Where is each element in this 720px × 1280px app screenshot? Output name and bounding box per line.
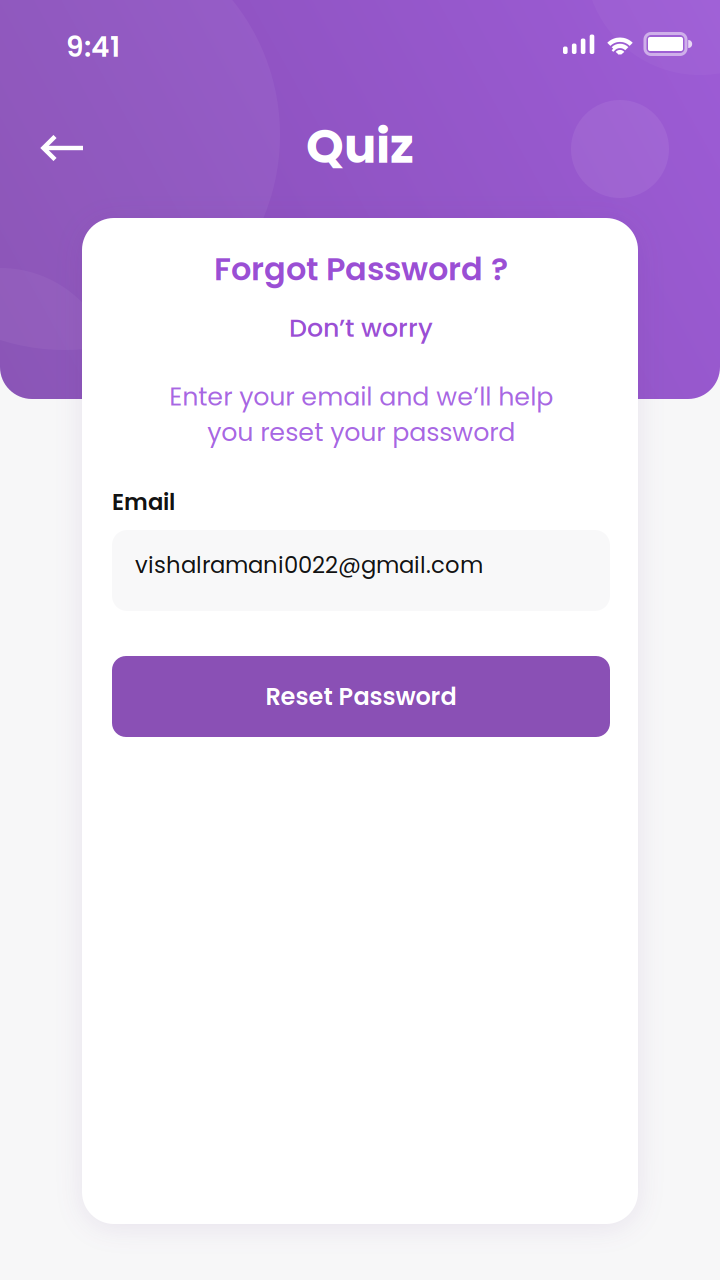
- staticText: Reset Password: [265, 680, 456, 713]
- staticText: Enter your email and we’ll help you rese…: [169, 379, 553, 450]
- staticText: Don’t worry: [289, 310, 433, 346]
- button[interactable]: Reset Password: [112, 656, 610, 737]
- staticText: 9:41: [66, 27, 120, 67]
- staticText: Quiz: [306, 112, 414, 180]
- staticText: Forgot Password ?: [214, 247, 508, 291]
- staticText: Email: [112, 486, 175, 518]
- staticText: vishalramani0022@gmail.com: [135, 549, 483, 581]
- button[interactable]: Back: [19, 112, 107, 184]
